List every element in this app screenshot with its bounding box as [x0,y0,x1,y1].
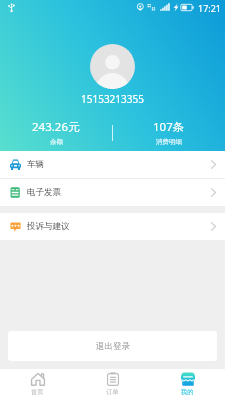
button[interactable]: 电子发票 [0,179,225,206]
button[interactable]: 订单 [75,369,150,400]
staticText: 243.26元 [32,119,80,135]
staticText: 电子发票 [27,187,61,198]
staticText: 订单 [106,388,119,396]
staticText: 余额 [50,138,63,146]
button[interactable]: 投诉与建议 [0,213,225,240]
staticText: 消费明细 [156,138,182,146]
button[interactable]: 首页 [0,369,75,400]
staticText: 首页 [31,388,44,396]
staticText: 我的 [181,388,194,396]
button[interactable]: 退出登录 [8,331,217,361]
staticText: 107条 [153,119,185,135]
staticText: 15153213355 [81,92,144,106]
staticText: 退出登录 [96,341,130,352]
staticText: 投诉与建议 [27,221,70,232]
staticText: 车辆 [27,159,44,170]
button[interactable]: 车辆 [0,151,225,178]
staticText: 17:21 [198,2,222,14]
button[interactable]: 我的 [150,369,225,400]
